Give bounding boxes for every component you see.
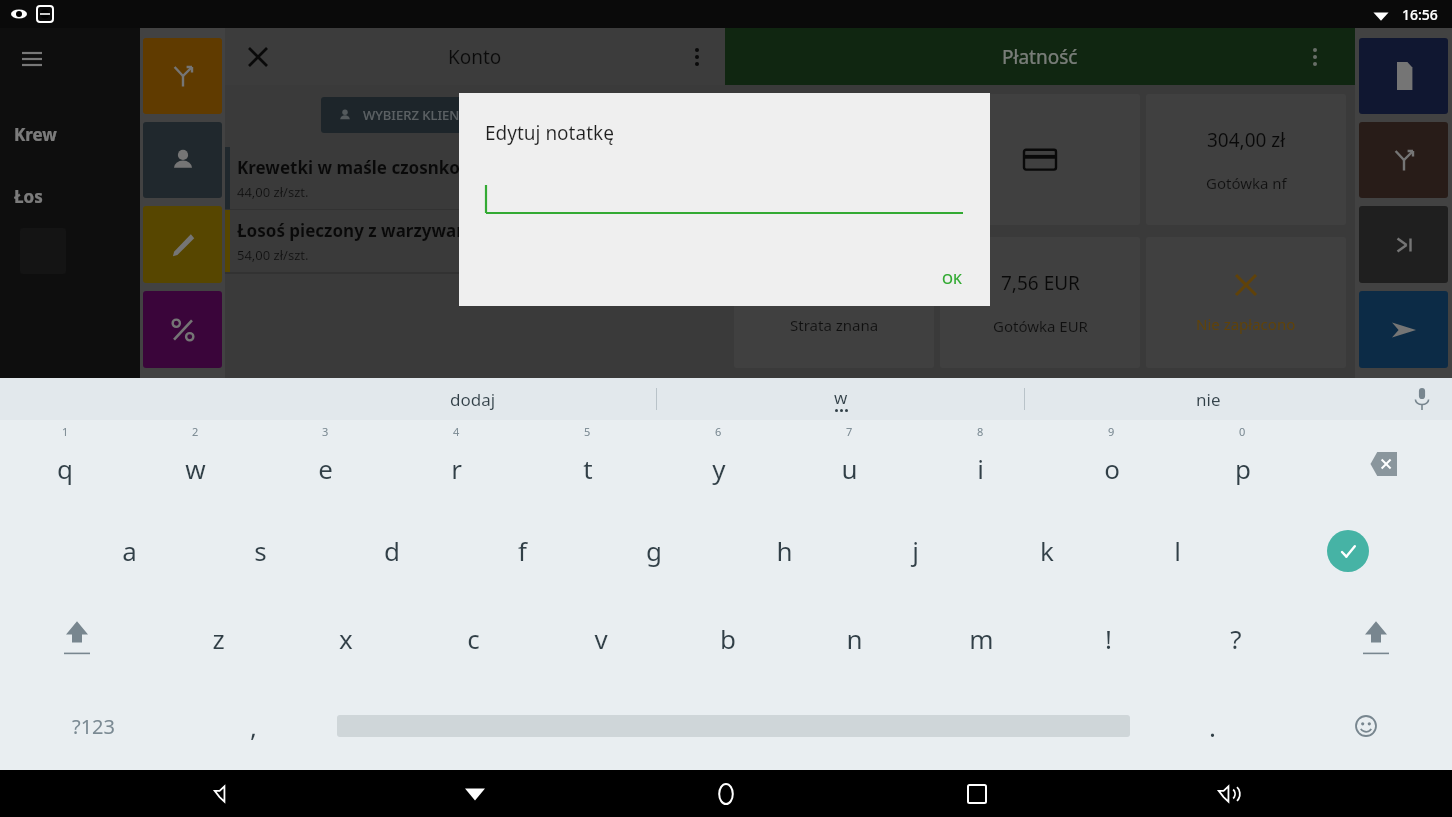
button[interactable]: Shift [0, 594, 154, 682]
button[interactable] [734, 94, 934, 225]
button[interactable]: Recents [950, 770, 1004, 817]
button[interactable]: Send [1359, 291, 1448, 368]
staticText: Gotówka EUR [993, 316, 1088, 336]
staticText: 6 [715, 424, 722, 439]
staticText: ! [1105, 621, 1112, 656]
staticText: dodaj [450, 388, 496, 411]
button[interactable]: c [410, 594, 537, 682]
staticText: j [912, 533, 919, 568]
button[interactable]: Document [1359, 38, 1448, 114]
staticText: Łos [14, 185, 43, 208]
button[interactable]: 2 [130, 420, 260, 507]
button[interactable]: m [918, 594, 1045, 682]
button[interactable]: 3 [260, 420, 391, 507]
button[interactable]: l [1112, 507, 1243, 594]
button[interactable]: Home [699, 770, 753, 817]
button[interactable]: n [791, 594, 918, 682]
button[interactable]: d [326, 507, 457, 594]
button[interactable]: Nie zapłacono [1146, 237, 1346, 368]
staticText: 5 [584, 424, 591, 439]
staticText: 3 [322, 424, 329, 439]
staticText: 9 [1108, 424, 1115, 439]
staticText: t [583, 451, 593, 486]
button[interactable]: Discount [143, 291, 222, 368]
staticText: y [712, 451, 726, 486]
staticText: Krewetki w maśle czosnkowym [237, 156, 501, 179]
button[interactable]: Split bill [1359, 122, 1448, 198]
button[interactable] [503, 97, 583, 133]
button[interactable] [940, 94, 1140, 225]
staticText: p [1235, 451, 1251, 486]
button[interactable]: w [657, 378, 1024, 420]
button[interactable]: g [588, 507, 719, 594]
staticText: e [318, 451, 333, 486]
button[interactable]: OK [926, 261, 978, 296]
button[interactable]: Volume down [197, 770, 251, 817]
button[interactable]: Krewetki w maśle czosnkowym [225, 147, 725, 210]
staticText: 8 [977, 424, 984, 439]
button[interactable]: v [537, 594, 664, 682]
button[interactable]: h [719, 507, 850, 594]
staticText: a [122, 533, 137, 568]
button[interactable]: More options [1305, 40, 1325, 74]
button[interactable]: 8 [915, 420, 1046, 507]
staticText: Gotówka nf [1206, 173, 1287, 193]
staticText: b [720, 621, 736, 656]
button[interactable]: ? [1172, 594, 1299, 682]
staticText: g [646, 533, 662, 568]
button[interactable]: z [154, 594, 282, 682]
button[interactable]: 7,56 EUR [940, 237, 1140, 368]
button[interactable]: Enter [1243, 507, 1452, 594]
button[interactable]: Close [247, 46, 269, 68]
button[interactable]: 5 [522, 420, 653, 507]
button[interactable]: Backspace [1308, 420, 1452, 507]
staticText: 54,00 zł/szt. [237, 246, 309, 264]
button[interactable]: ! [1045, 594, 1172, 682]
staticText: ? [1230, 621, 1242, 656]
staticText: d [384, 533, 400, 568]
button[interactable]: , [187, 682, 320, 770]
staticText: Łosoś pieczony z warzywami [237, 219, 478, 242]
button[interactable]: 1 [0, 420, 130, 507]
button[interactable]: Voice input [1392, 378, 1452, 420]
button[interactable]: Strata znana [734, 237, 934, 368]
staticText: WYBIERZ KLIENTA [363, 106, 475, 124]
button[interactable]: j [850, 507, 981, 594]
button[interactable]: Back [448, 770, 502, 817]
button[interactable]: Shift [1299, 594, 1452, 682]
button[interactable]: 4 [391, 420, 522, 507]
button[interactable]: a [64, 507, 195, 594]
staticText: w [834, 386, 848, 409]
button[interactable]: More options [687, 40, 707, 74]
button[interactable]: 304,00 zł [1146, 94, 1346, 225]
staticText: 7 [846, 424, 853, 439]
button[interactable]: x [282, 594, 410, 682]
staticText: v [594, 621, 608, 656]
button[interactable]: 7 [784, 420, 915, 507]
button[interactable]: dodaj [290, 378, 656, 420]
button[interactable]: nie [1025, 378, 1392, 420]
button[interactable]: 0 [1177, 420, 1308, 507]
staticText: f [518, 533, 527, 568]
staticText: 304,00 zł [1207, 127, 1286, 153]
button[interactable]: Space [320, 682, 1146, 770]
button[interactable]: Next [1359, 206, 1448, 283]
button[interactable]: . [1146, 682, 1279, 770]
button[interactable]: Edit [143, 206, 222, 283]
button[interactable]: Volume up [1201, 770, 1255, 817]
staticText: Płatność [1002, 44, 1078, 70]
button[interactable]: ?123 [0, 682, 187, 770]
staticText: q [57, 451, 73, 486]
staticText: nie [1196, 388, 1221, 411]
button[interactable]: 6 [653, 420, 784, 507]
button[interactable]: Emoji [1279, 682, 1452, 770]
button[interactable]: 9 [1046, 420, 1177, 507]
button[interactable]: Łosoś pieczony z warzywami [225, 210, 725, 273]
button[interactable]: f [457, 507, 588, 594]
button[interactable]: WYBIERZ KLIENTA [321, 97, 491, 133]
button[interactable]: Split [143, 38, 222, 114]
button[interactable]: k [981, 507, 1112, 594]
button[interactable]: Customer [143, 122, 222, 198]
button[interactable]: s [195, 507, 326, 594]
button[interactable]: b [664, 594, 791, 682]
